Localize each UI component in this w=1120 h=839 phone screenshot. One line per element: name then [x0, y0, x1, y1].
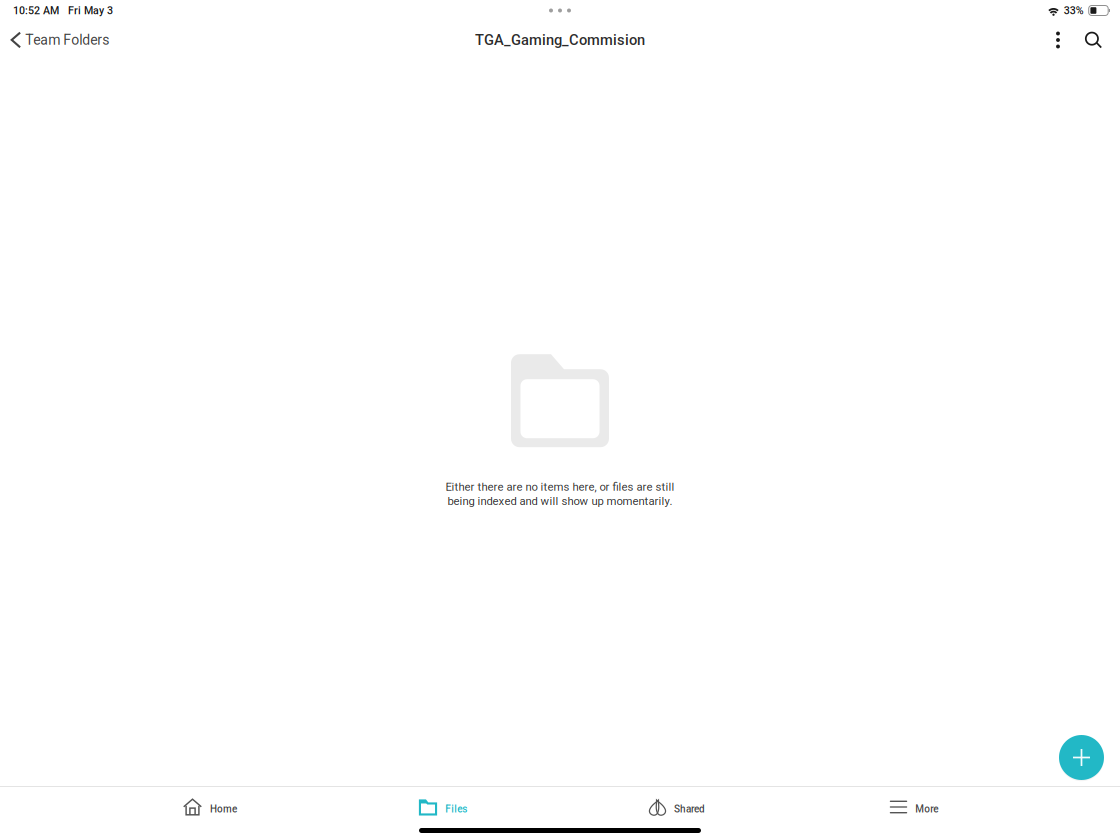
staticText: Either there are no items here, or files…	[445, 480, 674, 493]
staticText: Fri May 3	[68, 4, 113, 17]
button[interactable]: More options	[1047, 25, 1069, 54]
button[interactable]: Home	[173, 789, 247, 825]
button[interactable]: More	[880, 789, 948, 825]
staticText: Shared	[674, 803, 705, 815]
staticText: 10:52 AM	[13, 4, 59, 17]
button[interactable]: Shared	[639, 789, 715, 825]
button[interactable]: Files	[409, 789, 477, 825]
button[interactable]: Create	[1058, 734, 1104, 780]
staticText: TGA_Gaming_Commision	[475, 31, 645, 49]
staticText: Home	[210, 803, 237, 815]
button[interactable]: Search	[1079, 26, 1108, 54]
button[interactable]: Team Folders	[0, 25, 119, 54]
staticText: Files	[445, 803, 467, 815]
staticText: 33%	[1064, 4, 1084, 17]
staticText: Team Folders	[25, 32, 109, 48]
staticText: More	[915, 803, 938, 815]
staticText: being indexed and will show up momentari…	[447, 494, 672, 508]
